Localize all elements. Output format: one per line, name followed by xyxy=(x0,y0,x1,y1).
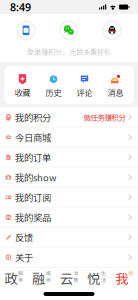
button[interactable]: WeChat xyxy=(57,19,81,41)
staticText: 活 xyxy=(101,276,106,283)
button[interactable]: 关于 xyxy=(0,247,138,267)
button[interactable]: 我的奖品 xyxy=(0,207,138,227)
button[interactable]: 评论 xyxy=(71,72,97,98)
button[interactable]: 反馈 xyxy=(0,227,138,247)
staticText: 我 xyxy=(115,268,128,288)
staticText: 做任务赚积分 xyxy=(83,112,125,123)
button[interactable]: 悦 xyxy=(83,268,110,288)
button[interactable]: 我的订阅 xyxy=(0,187,138,207)
staticText: 我的show xyxy=(15,170,56,184)
button[interactable]: 今日商城 xyxy=(0,127,138,147)
button[interactable]: 融 xyxy=(28,268,55,288)
staticText: 收藏 xyxy=(14,86,30,98)
staticText: 悦 xyxy=(87,268,100,288)
staticText: 生 xyxy=(101,269,106,277)
staticText: 我的奖品 xyxy=(15,210,51,224)
button[interactable]: 历史 xyxy=(40,72,66,98)
staticText: 评论 xyxy=(76,86,92,98)
staticText: 我的订阅 xyxy=(15,190,51,204)
staticText: 今日商城 xyxy=(15,130,51,144)
button[interactable]: 云 xyxy=(55,268,83,288)
staticText: 消息 xyxy=(107,86,123,98)
staticText: 费 xyxy=(73,276,78,283)
button[interactable]: 收藏 xyxy=(9,72,35,98)
button[interactable]: QQ xyxy=(100,19,124,41)
staticText: 历史 xyxy=(45,86,61,98)
staticText: 登录赚积分，光顾多重好礼 xyxy=(27,47,111,57)
staticText: 消 xyxy=(73,269,78,277)
staticText: 政 xyxy=(4,268,17,288)
button[interactable]: 我的订单 xyxy=(0,147,138,167)
button[interactable]: Mobile xyxy=(14,19,38,41)
staticText: 8:49 xyxy=(10,0,31,14)
staticText: 我的订单 xyxy=(15,150,51,164)
staticText: 的 xyxy=(128,269,133,277)
button[interactable]: 我 xyxy=(110,268,138,288)
staticText: 务 xyxy=(18,276,23,283)
button[interactable]: 我的show xyxy=(0,167,138,187)
staticText: 融 xyxy=(32,268,45,288)
staticText: 反馈 xyxy=(15,230,33,244)
staticText: 服 xyxy=(18,269,23,277)
button[interactable]: 政 xyxy=(0,268,28,288)
staticText: 关于 xyxy=(15,250,33,264)
staticText: 云 xyxy=(60,268,73,288)
staticText: 我的积分 xyxy=(15,110,51,124)
staticText: 媒 xyxy=(46,269,51,277)
button[interactable]: 消息 xyxy=(102,72,128,98)
staticText: 号 xyxy=(46,276,51,283)
button[interactable]: 我的积分 xyxy=(0,107,138,127)
